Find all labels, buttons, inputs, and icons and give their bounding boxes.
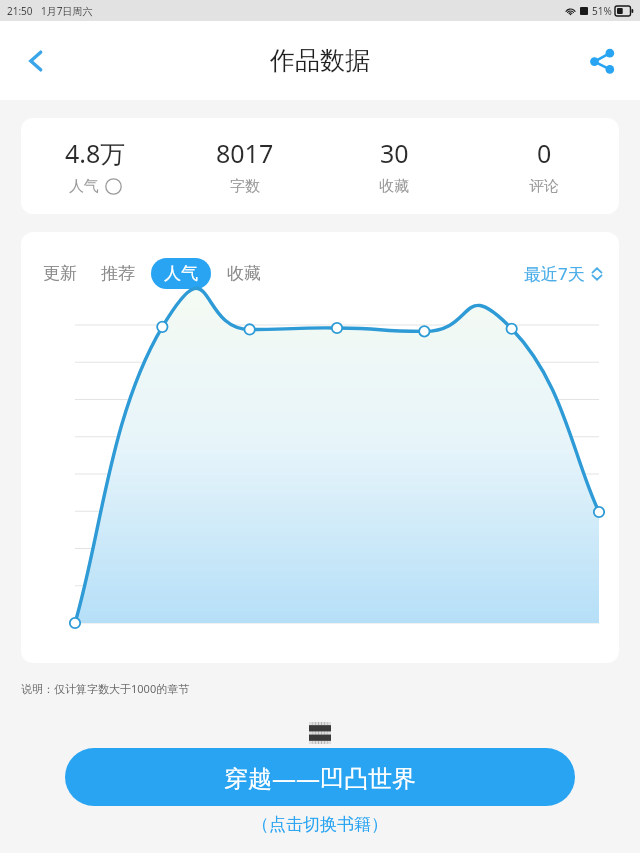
button[interactable]: 更新 [35,258,85,289]
button[interactable]: 推荐 [93,258,143,289]
staticText: 穿越——凹凸世界 [224,761,416,794]
button[interactable]: 30 [319,118,469,214]
staticText: 推荐 [101,263,135,284]
staticText: 最近7天 [524,262,585,285]
button[interactable]: 4.8万 [21,118,170,214]
button[interactable]: Share [576,35,628,87]
staticText: 说明：仅计算字数大于1000的章节 [21,681,190,696]
staticText: 8017 [216,136,274,170]
button[interactable]: 收藏 [219,258,269,289]
staticText: 51% [592,4,612,18]
staticText: 作品数据 [270,45,370,76]
staticText: 人气 [164,263,198,284]
button[interactable]: 人气 [151,258,211,289]
button[interactable]: 0 [469,118,619,214]
staticText: 更新 [43,263,77,284]
staticText: （点击切换书籍） [0,814,640,835]
staticText: 30 [380,136,409,170]
staticText: 收藏 [227,263,261,284]
staticText: 评论 [529,177,559,196]
staticText: 收藏 [379,177,409,196]
button[interactable]: 穿越——凹凸世界 [65,748,575,806]
staticText: 人气 [69,177,99,196]
staticText: 0 [537,136,552,170]
button[interactable]: 8017 [170,118,319,214]
staticText: 字数 [230,177,260,196]
button[interactable]: Back [8,33,64,89]
staticText: 1月7日周六 [41,4,93,18]
staticText: 4.8万 [65,136,126,170]
button[interactable]: 最近7天 [518,258,609,289]
staticText: 21:50 [7,4,33,18]
